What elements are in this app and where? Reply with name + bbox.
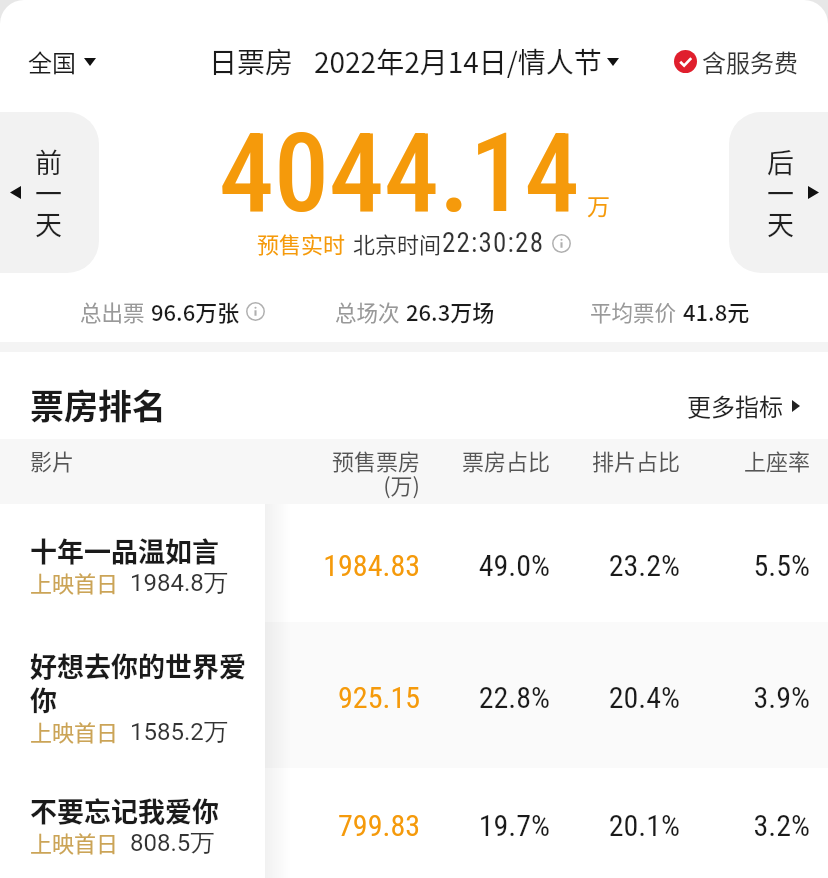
- staticText: 23.2%: [608, 548, 680, 583]
- staticText: 总出票: [80, 296, 145, 327]
- button[interactable]: 好想去你的世界爱你: [0, 622, 828, 768]
- staticText: 更多指标: [687, 388, 783, 423]
- button[interactable]: 更多指标: [687, 388, 800, 423]
- staticText: 不要忘记我爱你: [30, 791, 219, 830]
- staticText: 好想去你的世界爱你: [30, 646, 270, 719]
- button[interactable]: 不要忘记我爱你: [0, 768, 828, 878]
- staticText: 49.0%: [478, 548, 550, 583]
- button[interactable]: 总出票: [80, 295, 240, 327]
- button[interactable]: 后一天: [729, 112, 828, 273]
- button[interactable]: 含服务费: [674, 44, 798, 79]
- staticText: 总场次: [335, 296, 400, 327]
- staticText: 上映首日: [30, 826, 119, 858]
- staticText: 日票房: [209, 41, 294, 82]
- staticText: 925.15: [338, 680, 420, 715]
- staticText: 平均票价: [590, 296, 677, 327]
- staticText: 排片占比: [591, 444, 680, 476]
- staticText: 十年一品温如言: [30, 531, 219, 570]
- staticText: 前 一 天: [35, 142, 62, 243]
- staticText: 1585.2万: [130, 717, 228, 747]
- staticText: 北京时间: [353, 227, 442, 259]
- staticText: 全国: [28, 44, 76, 79]
- staticText: 1984.83: [323, 548, 420, 583]
- staticText: 808.5万: [130, 828, 215, 858]
- staticText: 22.8%: [478, 680, 550, 715]
- staticText: 上映首日: [30, 566, 119, 598]
- staticText: 19.7%: [478, 808, 550, 843]
- staticText: 后 一 天: [767, 142, 794, 243]
- staticText: 影片: [30, 444, 75, 476]
- staticText: 预售票房 (万): [331, 444, 420, 500]
- staticText: 799.83: [338, 808, 420, 843]
- button[interactable]: 日票房: [209, 41, 619, 82]
- staticText: 票房占比: [461, 444, 550, 476]
- staticText: 22:30:28: [442, 227, 545, 259]
- staticText: 万: [587, 188, 610, 221]
- staticText: 20.4%: [608, 680, 680, 715]
- button[interactable]: 十年一品温如言: [0, 504, 828, 622]
- staticText: 20.1%: [608, 808, 680, 843]
- button[interactable]: 全国: [22, 36, 102, 87]
- staticText: 5.5%: [753, 548, 810, 583]
- staticText: 2022年2月14日/情人节: [314, 41, 602, 82]
- staticText: 41.8元: [683, 295, 750, 327]
- staticText: 上座率: [743, 444, 810, 476]
- button[interactable]: 总场次: [335, 295, 495, 327]
- staticText: 3.9%: [753, 680, 810, 715]
- staticText: 3.2%: [753, 808, 810, 843]
- staticText: 含服务费: [702, 44, 798, 79]
- staticText: 预售实时: [257, 227, 346, 259]
- staticText: 4044.14: [219, 109, 580, 238]
- button[interactable]: 前一天: [0, 112, 99, 273]
- staticText: 96.6万张: [151, 295, 240, 327]
- staticText: 上映首日: [30, 715, 119, 747]
- button[interactable]: 平均票价: [590, 295, 750, 327]
- staticText: 票房排名: [30, 380, 166, 429]
- staticText: 26.3万场: [406, 295, 495, 327]
- staticText: 1984.8万: [130, 568, 228, 598]
